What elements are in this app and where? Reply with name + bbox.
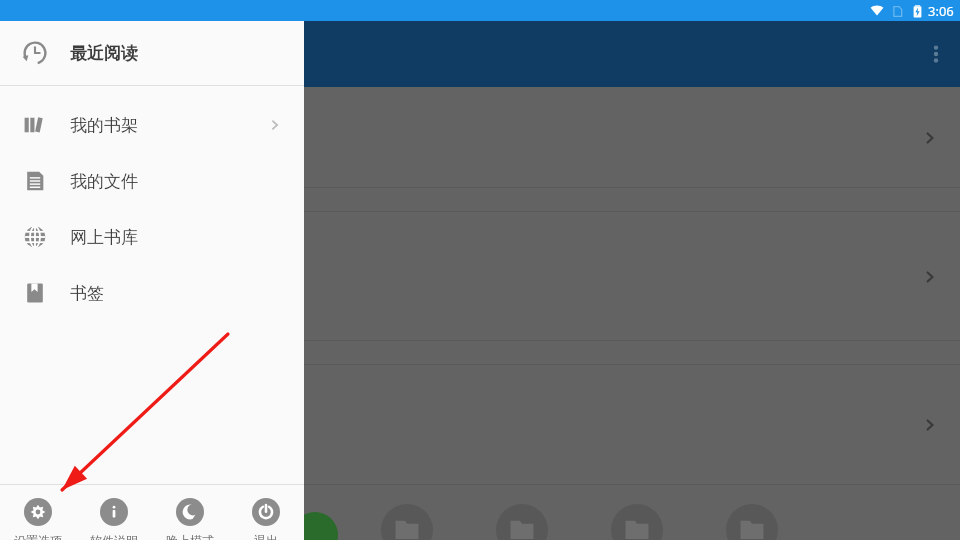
button[interactable]: 最近阅读 xyxy=(0,21,304,85)
button[interactable]: Folder xyxy=(496,504,548,540)
button[interactable]: 我的文件 xyxy=(0,153,304,209)
button[interactable]: 晚上模式 xyxy=(152,485,228,540)
button[interactable] xyxy=(0,188,960,212)
staticText: 软件说明 xyxy=(90,533,138,540)
staticText: 网上书库 xyxy=(70,227,138,248)
staticText: 最近阅读 xyxy=(70,43,138,64)
button[interactable]: Folder xyxy=(611,504,663,540)
button[interactable]: 我的书架 xyxy=(0,97,304,153)
button[interactable]: Add xyxy=(292,512,338,540)
button[interactable] xyxy=(0,87,960,188)
button[interactable]: Folder xyxy=(726,504,778,540)
button[interactable] xyxy=(0,365,960,485)
button[interactable]: 退出 xyxy=(228,485,304,540)
button[interactable]: 网上书库 xyxy=(0,209,304,265)
button[interactable]: 软件说明 xyxy=(76,485,152,540)
staticText: 3:06 xyxy=(928,2,954,20)
button[interactable]: More options xyxy=(912,30,960,78)
staticText: 晚上模式 xyxy=(166,533,214,540)
button[interactable]: Folder xyxy=(381,504,433,540)
staticText: 退出 xyxy=(254,533,278,540)
button[interactable] xyxy=(0,212,960,341)
staticText: 我的书架 xyxy=(70,115,138,136)
staticText: 我的文件 xyxy=(70,171,138,192)
button[interactable]: 设置选项 xyxy=(0,485,76,540)
button[interactable]: 书签 xyxy=(0,265,304,321)
staticText: 设置选项 xyxy=(14,533,62,540)
staticText: 书签 xyxy=(70,283,104,304)
button[interactable] xyxy=(0,341,960,365)
